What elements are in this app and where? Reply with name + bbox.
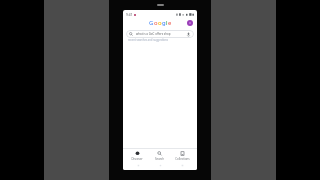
staticText: what is a GoC offers shop — [136, 32, 171, 36]
staticText: o — [158, 19, 162, 27]
staticText: o — [154, 19, 158, 27]
staticText: l — [166, 19, 168, 27]
button[interactable]: Discover — [126, 149, 148, 162]
staticText: e — [168, 19, 172, 27]
button[interactable]: Collections — [171, 149, 194, 162]
staticText: Search — [155, 157, 164, 161]
staticText: g — [162, 19, 166, 27]
button[interactable]: what is a GoC offers shop — [126, 30, 194, 38]
button[interactable]: Google Account — [187, 20, 193, 26]
staticText: 9:41 — [126, 13, 133, 16]
staticText: G — [149, 19, 154, 27]
staticText: Collections — [175, 157, 190, 161]
staticText: recent searches and suggestions — [128, 38, 168, 42]
button[interactable]: Search — [148, 149, 171, 162]
staticText: Discover — [131, 157, 143, 161]
